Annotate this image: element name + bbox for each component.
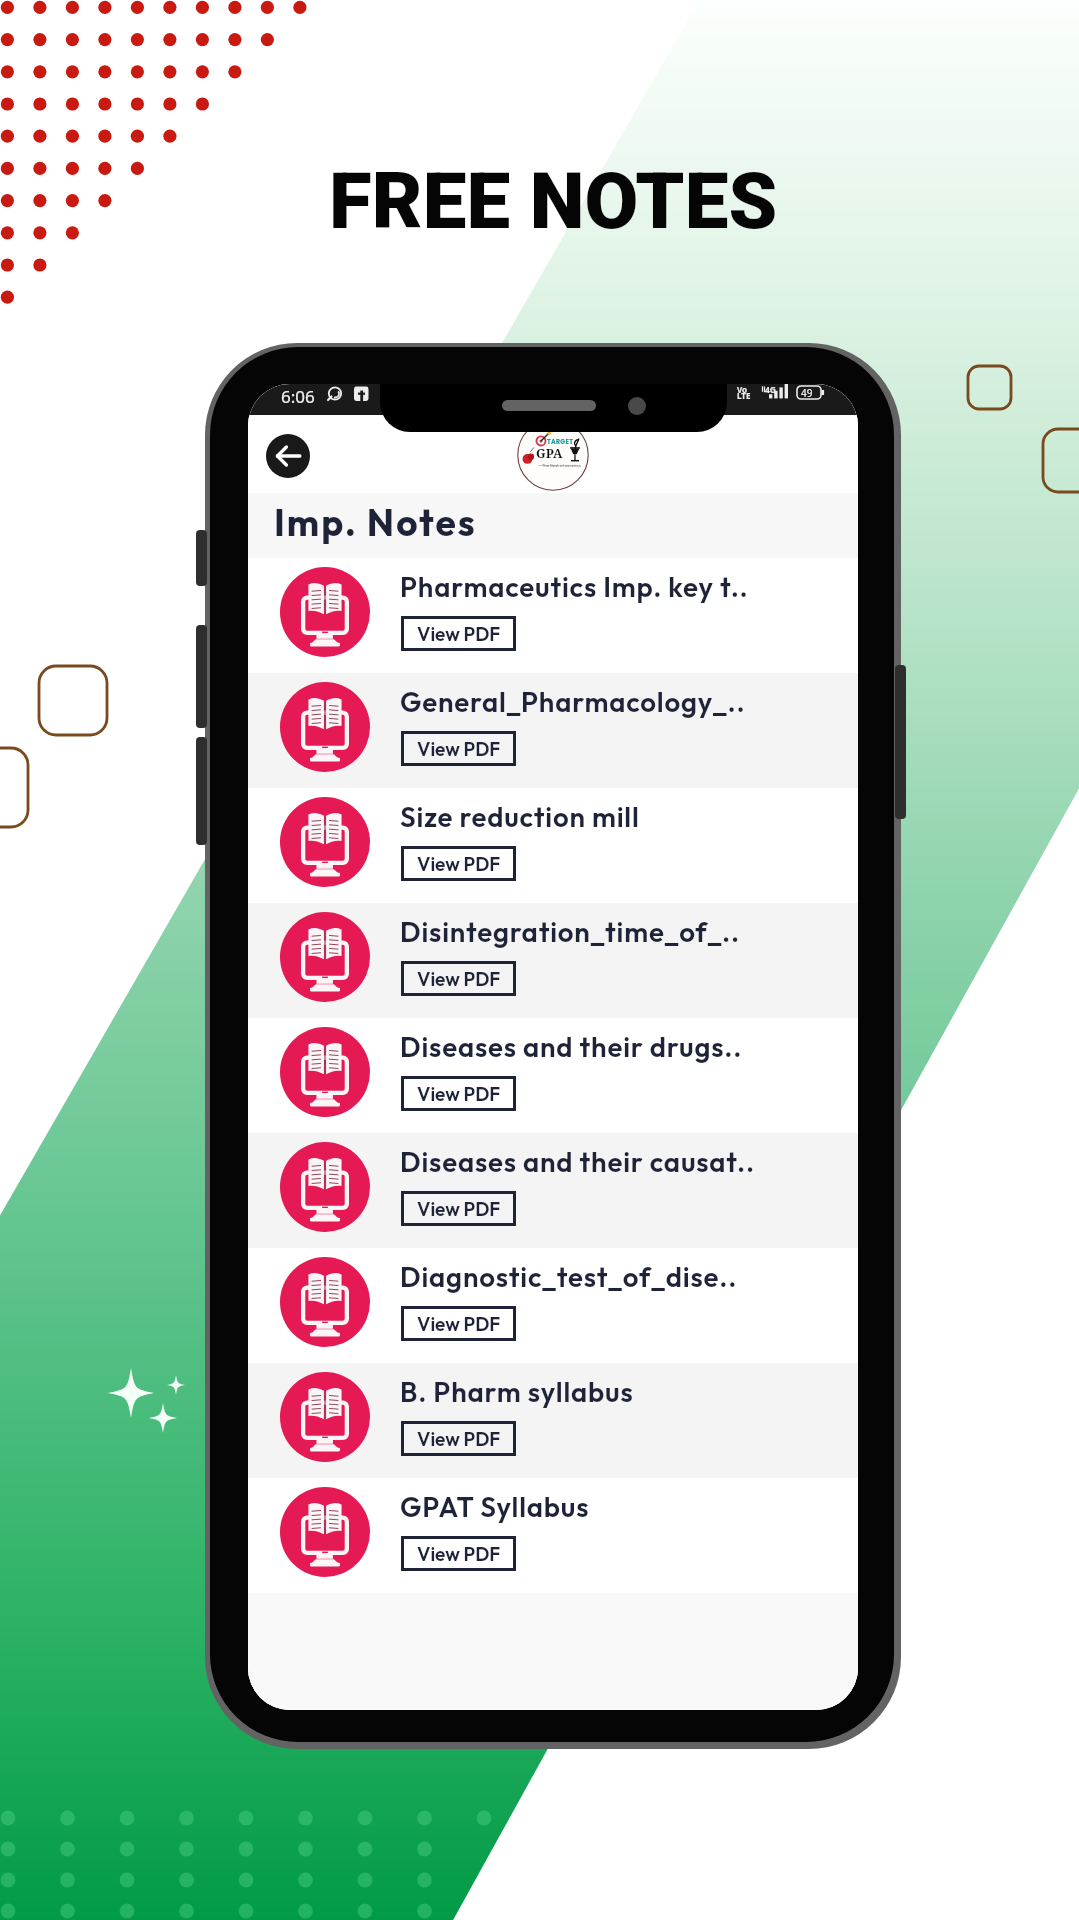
- staticText: B. Pharm syllabus: [400, 1374, 634, 1409]
- button[interactable]: View PDF: [401, 731, 516, 766]
- staticText: Vo LTE: [737, 384, 751, 402]
- button[interactable]: B. Pharm syllabus: [248, 1363, 858, 1478]
- button[interactable]: View PDF: [401, 1306, 516, 1341]
- button[interactable]: View PDF: [401, 1191, 516, 1226]
- staticText: Size reduction mill: [400, 799, 640, 834]
- staticText: GPA: [536, 445, 563, 462]
- staticText: View PDF: [417, 737, 501, 761]
- staticText: View PDF: [417, 1312, 501, 1336]
- staticText: FREE NOTES: [329, 156, 778, 247]
- staticText: View PDF: [417, 967, 501, 991]
- staticText: 49: [801, 386, 813, 400]
- staticText: Imp. Notes: [274, 499, 477, 546]
- staticText: The Best of success: [542, 463, 581, 469]
- button[interactable]: View PDF: [401, 961, 516, 996]
- button[interactable]: GPAT Syllabus: [248, 1478, 858, 1593]
- button[interactable]: View PDF: [401, 846, 516, 881]
- staticText: Diagnostic_test_of_dise..: [400, 1259, 738, 1294]
- staticText: 6:06: [281, 385, 315, 408]
- button[interactable]: View PDF: [401, 616, 516, 651]
- button[interactable]: Pharmaceutics Imp. key t..: [248, 558, 858, 673]
- button[interactable]: Diagnostic_test_of_dise..: [248, 1248, 858, 1363]
- staticText: Pharmaceutics Imp. key t..: [400, 569, 749, 604]
- staticText: View PDF: [417, 1427, 501, 1451]
- staticText: View PDF: [417, 1197, 501, 1221]
- staticText: GPAT Syllabus: [400, 1489, 590, 1524]
- staticText: General_Pharmacology_..: [400, 684, 746, 719]
- button[interactable]: View PDF: [401, 1536, 516, 1571]
- button[interactable]: Disintegration_time_of_..: [248, 903, 858, 1018]
- staticText: View PDF: [417, 1082, 501, 1106]
- staticText: View PDF: [417, 1542, 501, 1566]
- button[interactable]: Back: [266, 434, 310, 478]
- button[interactable]: Size reduction mill: [248, 788, 858, 903]
- button[interactable]: Diseases and their causat..: [248, 1133, 858, 1248]
- staticText: TARGET: [547, 437, 574, 446]
- button[interactable]: General_Pharmacology_..: [248, 673, 858, 788]
- button[interactable]: View PDF: [401, 1421, 516, 1456]
- staticText: Diseases and their causat..: [400, 1144, 755, 1179]
- staticText: View PDF: [417, 622, 501, 646]
- staticText: Diseases and their drugs..: [400, 1029, 743, 1064]
- staticText: Disintegration_time_of_..: [400, 914, 741, 949]
- staticText: 4G: [765, 384, 777, 396]
- staticText: View PDF: [417, 852, 501, 876]
- button[interactable]: Diseases and their drugs..: [248, 1018, 858, 1133]
- button[interactable]: View PDF: [401, 1076, 516, 1111]
